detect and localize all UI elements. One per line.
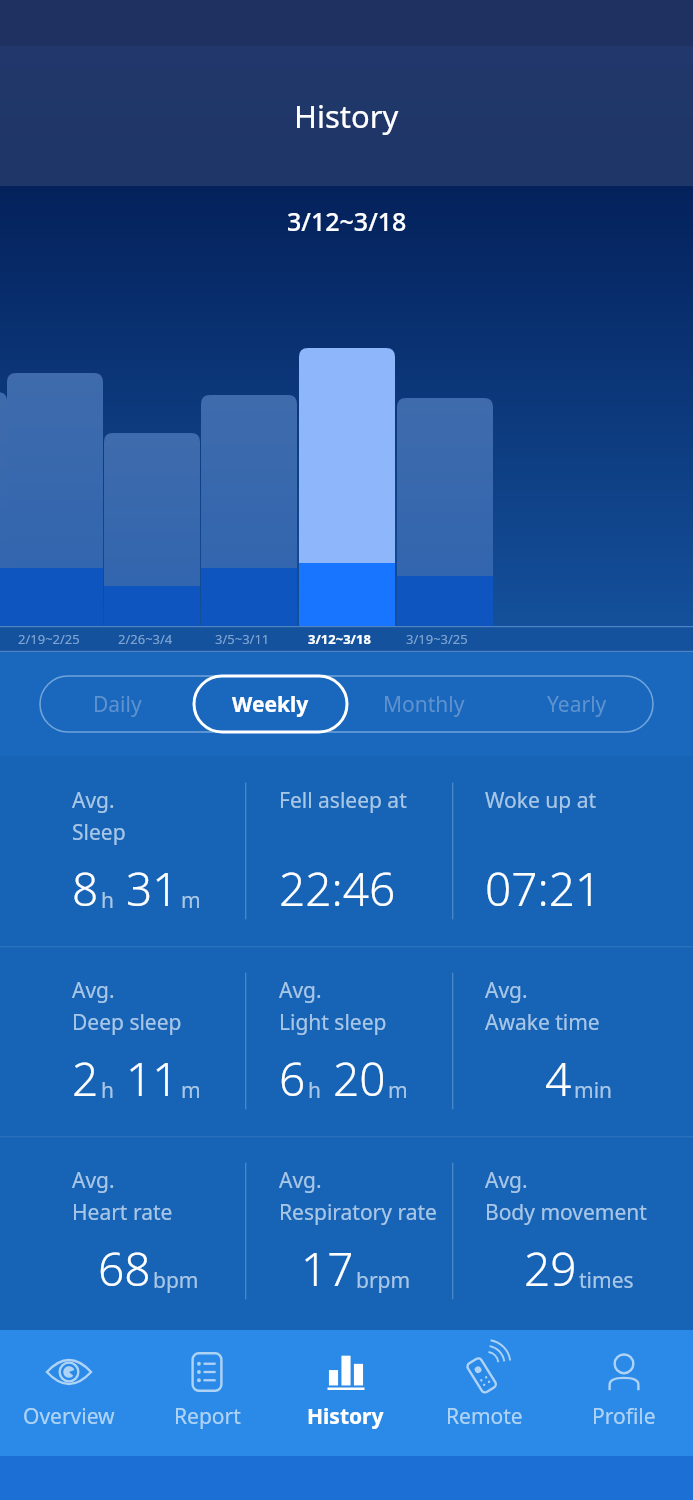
staticText: Avg. (279, 976, 322, 1005)
staticText: m (181, 886, 201, 915)
staticText: Profile (592, 1402, 656, 1431)
staticText: Avg. (72, 786, 115, 815)
staticText: 22:46 (279, 857, 396, 920)
staticText: brpm (356, 1266, 411, 1295)
staticText: 8 (72, 857, 99, 920)
staticText: Avg. (485, 976, 528, 1005)
staticText: Weekly (232, 690, 309, 719)
button[interactable]: Avg. (452, 946, 693, 1136)
staticText: 2 (72, 1047, 99, 1110)
staticText: Woke up at (485, 786, 597, 815)
staticText: 11 (114, 1047, 179, 1110)
button[interactable]: Avg. (0, 756, 245, 946)
staticText: History (294, 95, 399, 137)
staticText: 3/5~3/11 (215, 630, 270, 648)
staticText: Avg. (279, 1166, 322, 1195)
staticText: h (101, 1076, 114, 1105)
button[interactable]: Avg. (245, 946, 452, 1136)
staticText: 4 (545, 1047, 572, 1110)
button[interactable]: History (276, 1330, 415, 1456)
staticText: times (579, 1266, 634, 1295)
staticText: Avg. (72, 976, 115, 1005)
staticText: Respiratory rate (279, 1198, 437, 1227)
staticText: Heart rate (72, 1198, 173, 1227)
staticText: m (388, 1076, 408, 1105)
staticText: History (307, 1402, 384, 1431)
staticText: Deep sleep (72, 1008, 182, 1037)
staticText: Sleep (72, 818, 126, 847)
staticText: min (574, 1076, 613, 1105)
staticText: h (101, 886, 114, 915)
staticText: Light sleep (279, 1008, 387, 1037)
staticText: 20 (321, 1047, 386, 1110)
button[interactable]: Profile (554, 1330, 693, 1456)
staticText: Avg. (72, 1166, 115, 1195)
staticText: Remote (446, 1402, 523, 1431)
button[interactable]: Avg. (452, 1136, 693, 1326)
staticText: Yearly (547, 690, 607, 719)
button[interactable]: Overview (0, 1330, 138, 1456)
button[interactable]: Weekly (194, 676, 347, 732)
staticText: bpm (153, 1266, 199, 1295)
staticText: 31 (114, 857, 179, 920)
button[interactable]: 3/12~3/18 (291, 626, 388, 652)
button[interactable]: Avg. (0, 946, 245, 1136)
staticText: Daily (93, 690, 142, 719)
staticText: 68 (98, 1237, 151, 1300)
button[interactable]: 2/19~2/25 (0, 626, 97, 652)
staticText: 2/19~2/25 (18, 630, 80, 648)
staticText: Monthly (383, 690, 465, 719)
staticText: Body movement (485, 1198, 647, 1227)
staticText: 3/19~3/25 (406, 630, 468, 648)
staticText: Overview (23, 1402, 115, 1431)
button[interactable]: Woke up at (452, 756, 693, 946)
staticText: 29 (524, 1237, 577, 1300)
staticText: 07:21 (485, 857, 602, 920)
staticText: m (181, 1076, 201, 1105)
staticText: 2/26~3/4 (118, 630, 173, 648)
button[interactable]: Daily (40, 676, 194, 732)
button[interactable]: Avg. (245, 1136, 452, 1326)
button[interactable]: 3/5~3/11 (194, 626, 291, 652)
button[interactable]: Avg. (0, 1136, 245, 1326)
button[interactable]: Yearly (500, 676, 653, 732)
button[interactable]: Fell asleep at (245, 756, 452, 946)
staticText: 6 (279, 1047, 306, 1110)
button[interactable]: Report (138, 1330, 276, 1456)
staticText: Report (174, 1402, 241, 1431)
button[interactable]: 2/26~3/4 (97, 626, 194, 652)
button[interactable]: 3/19~3/25 (388, 626, 485, 652)
staticText: Avg. (485, 1166, 528, 1195)
staticText: 17 (301, 1237, 354, 1300)
staticText: Fell asleep at (279, 786, 407, 815)
staticText: h (308, 1076, 321, 1105)
staticText: Awake time (485, 1008, 600, 1037)
staticText: 3/12~3/18 (308, 630, 371, 648)
button[interactable]: Remote (415, 1330, 554, 1456)
button[interactable]: Monthly (347, 676, 500, 732)
staticText: 3/12~3/18 (287, 204, 407, 238)
